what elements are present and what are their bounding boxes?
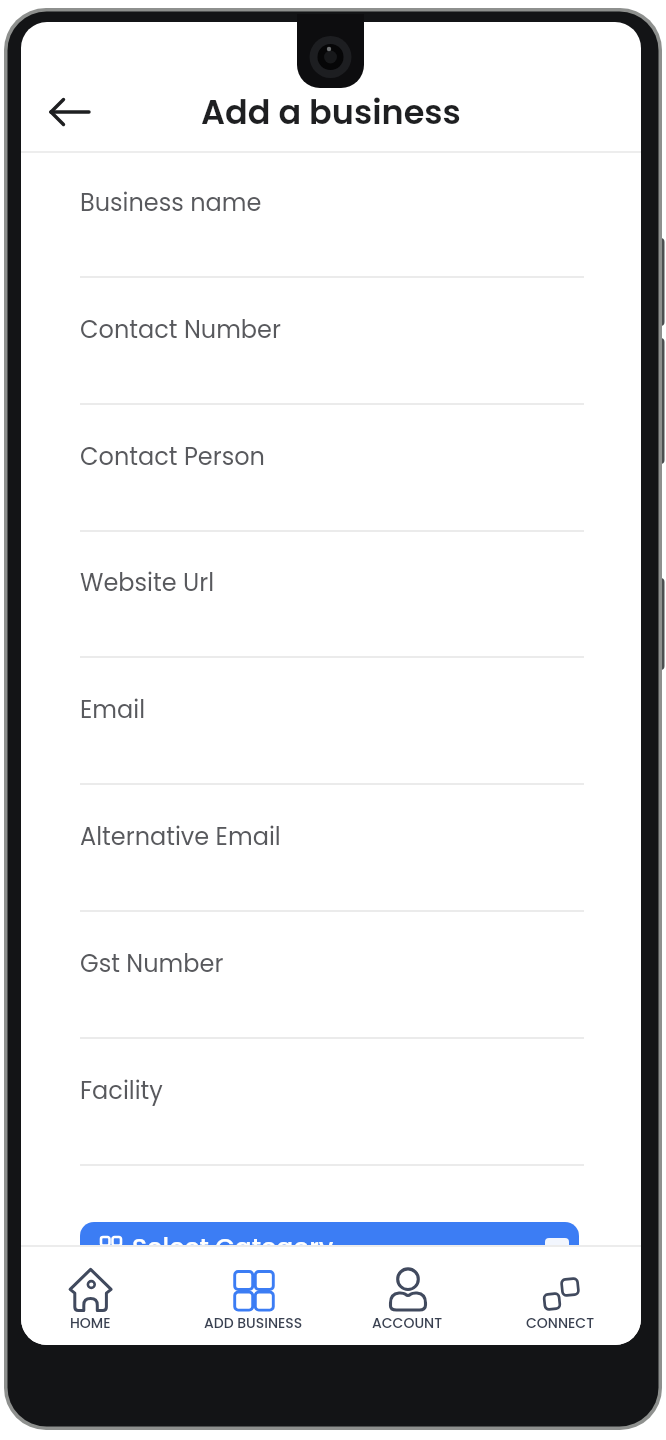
- button[interactable]: Facility: [80, 1067, 584, 1167]
- staticText: Email: [80, 693, 146, 727]
- staticText: CONNECT: [526, 1313, 595, 1333]
- button[interactable]: [38, 80, 102, 144]
- button[interactable]: ADD BUSINESS: [176, 1245, 331, 1345]
- staticText: Contact Number: [80, 313, 281, 347]
- staticText: Business name: [80, 186, 262, 220]
- staticText: HOME: [70, 1313, 111, 1333]
- button[interactable]: Alternative Email: [80, 813, 584, 913]
- button[interactable]: ACCOUNT: [330, 1245, 485, 1345]
- button[interactable]: Email: [80, 686, 584, 786]
- staticText: ADD BUSINESS: [204, 1313, 303, 1333]
- button[interactable]: HOME: [21, 1245, 168, 1345]
- staticText: Select Category: [132, 1230, 334, 1265]
- button[interactable]: Gst Number: [80, 940, 584, 1040]
- staticText: Alternative Email: [80, 820, 281, 854]
- button[interactable]: Business name: [80, 179, 584, 279]
- button[interactable]: Contact Person: [80, 433, 584, 533]
- button[interactable]: Select Category: [80, 1222, 579, 1298]
- staticText: Facility: [80, 1074, 163, 1108]
- staticText: Website Url: [80, 566, 215, 600]
- staticText: Add a business: [201, 89, 461, 136]
- button[interactable]: CONNECT: [483, 1245, 638, 1345]
- button[interactable]: Contact Number: [80, 306, 584, 406]
- staticText: Gst Number: [80, 947, 224, 981]
- button[interactable]: Website Url: [80, 559, 584, 659]
- staticText: ACCOUNT: [372, 1313, 443, 1333]
- staticText: Contact Person: [80, 440, 265, 474]
